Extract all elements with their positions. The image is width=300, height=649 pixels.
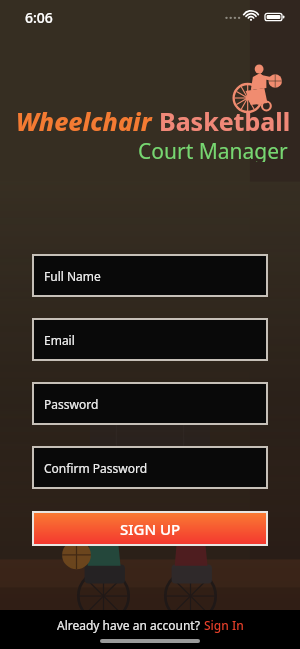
staticText: Already have an account? [57, 617, 204, 633]
staticText: Full Name [44, 268, 101, 284]
staticText: Court Manager [138, 137, 288, 162]
button[interactable]: Password [34, 384, 266, 423]
button[interactable]: Email [34, 320, 266, 359]
staticText: Basketball [159, 104, 291, 138]
staticText: Confirm Password [44, 460, 148, 476]
button[interactable]: Sign In [204, 617, 244, 633]
staticText: Sign In [204, 617, 244, 633]
other: Wheelchair basketball logo [230, 62, 282, 112]
staticText: Wheelchair [16, 104, 152, 138]
staticText: Email [44, 332, 75, 348]
button[interactable]: Confirm Password [34, 448, 266, 487]
button[interactable]: SIGN UP [34, 513, 266, 544]
staticText: Password [44, 396, 99, 412]
staticText: SIGN UP [120, 519, 181, 539]
staticText: 6:06 [25, 8, 53, 27]
button[interactable]: Full Name [34, 256, 266, 295]
